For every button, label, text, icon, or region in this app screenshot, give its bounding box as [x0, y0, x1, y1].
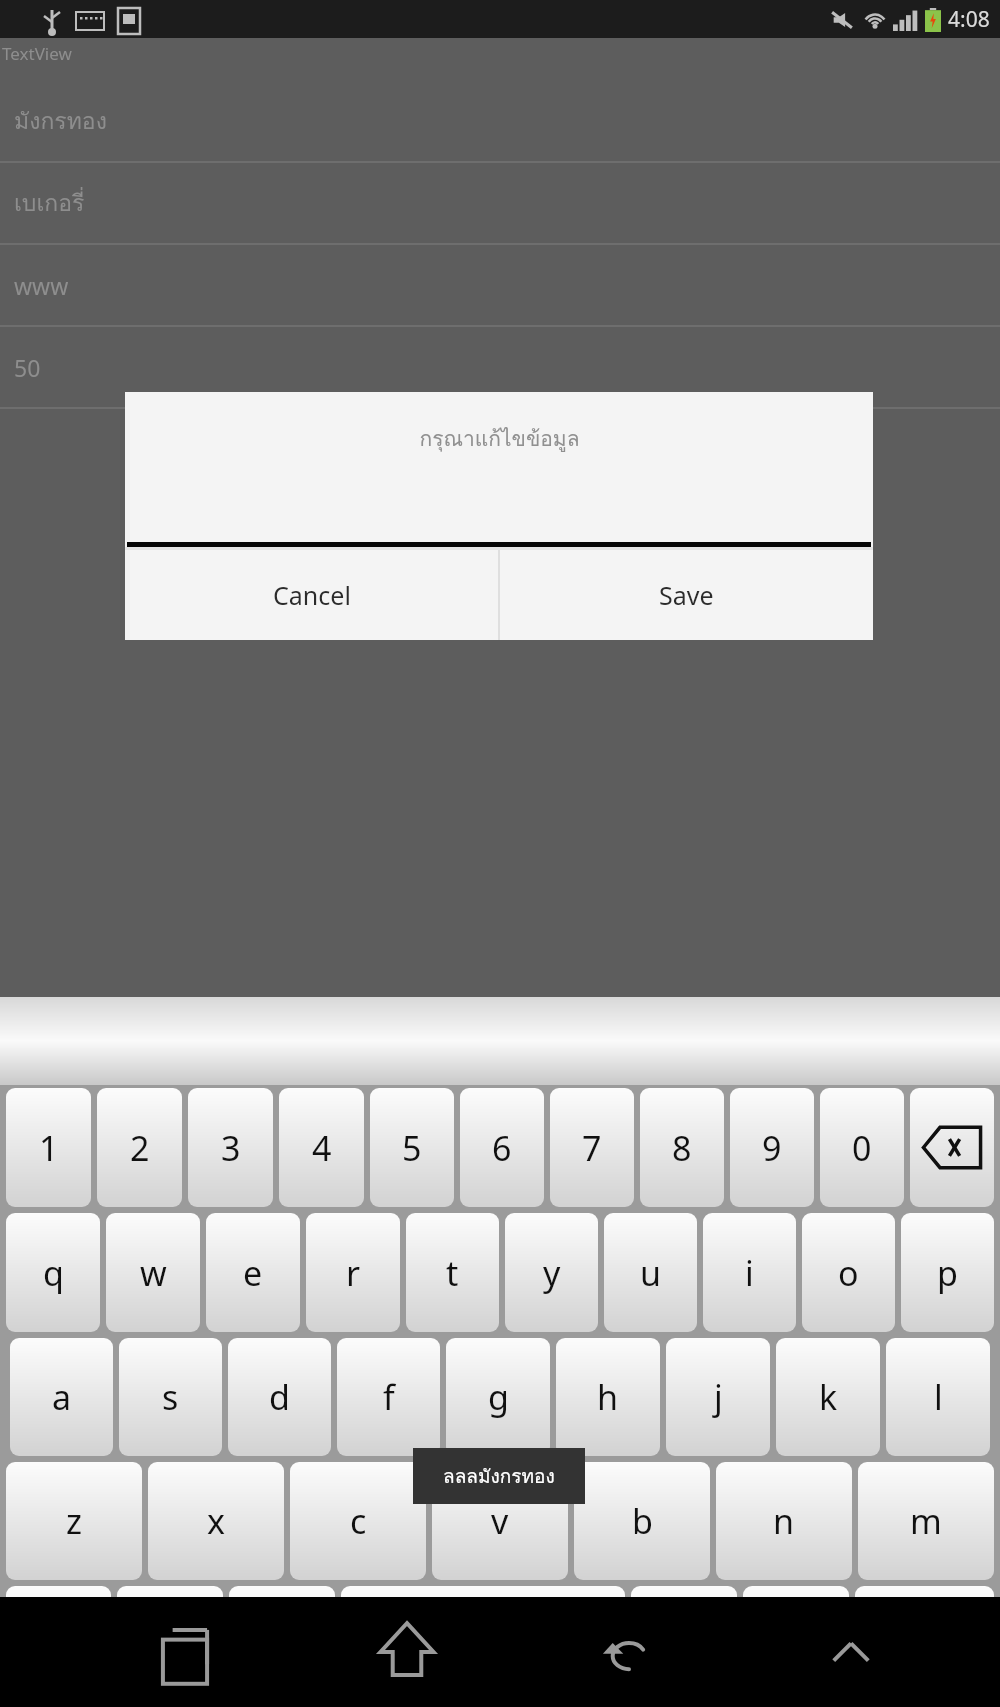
button[interactable]: Home [359, 1604, 455, 1700]
button[interactable]: 5 [370, 1088, 454, 1207]
button[interactable]: x [148, 1462, 284, 1580]
button[interactable]: 2 [97, 1088, 182, 1207]
button[interactable]: 8 [640, 1088, 724, 1207]
button[interactable]: Save [500, 550, 873, 640]
button[interactable]: g [446, 1338, 550, 1456]
button[interactable]: > [631, 1586, 737, 1704]
button[interactable]: Backspace [910, 1088, 994, 1207]
button[interactable]: @# [117, 1586, 223, 1704]
button[interactable]: q [6, 1213, 100, 1332]
staticText: p [937, 1250, 958, 1296]
button[interactable]: v [432, 1462, 568, 1580]
staticText: r [346, 1250, 361, 1296]
button[interactable]: Enter [855, 1586, 994, 1704]
staticText: 5 [402, 1125, 422, 1171]
staticText: b [632, 1498, 653, 1544]
staticText: d [269, 1374, 290, 1420]
button[interactable]: 4 [279, 1088, 364, 1207]
button[interactable]: l [886, 1338, 990, 1456]
staticText: f [383, 1374, 395, 1420]
button[interactable]: ! [743, 1586, 849, 1704]
staticText: c [350, 1498, 367, 1544]
button[interactable]: t [406, 1213, 499, 1332]
staticText: @# [147, 1625, 194, 1666]
button[interactable]: m [858, 1462, 994, 1580]
staticText: x [207, 1498, 225, 1544]
button[interactable]: c [290, 1462, 426, 1580]
staticText: 4:08 [948, 5, 990, 34]
staticText: 8 [672, 1125, 692, 1171]
button[interactable]: Back [581, 1604, 677, 1700]
staticText: y [543, 1250, 561, 1296]
staticText: www [14, 270, 69, 301]
button[interactable]: 7 [550, 1088, 634, 1207]
button[interactable]: o [802, 1213, 895, 1332]
button[interactable]: 50 [0, 327, 1000, 407]
staticText: u [640, 1250, 662, 1296]
staticText: 2 [130, 1125, 150, 1171]
staticText: เบเกอรี่ [14, 185, 85, 222]
staticText: a [52, 1374, 72, 1420]
staticText: w [140, 1250, 167, 1296]
staticText: 9 [762, 1125, 782, 1171]
staticText: m [910, 1498, 942, 1544]
staticText: Save [659, 578, 714, 612]
button[interactable]: n [716, 1462, 852, 1580]
button[interactable]: z [6, 1462, 142, 1580]
staticText: i [745, 1250, 754, 1296]
button[interactable]: i [703, 1213, 796, 1332]
button[interactable]: a [10, 1338, 113, 1456]
staticText: v [491, 1498, 509, 1544]
button[interactable]: ⌴ [341, 1586, 625, 1704]
button[interactable]: b [574, 1462, 710, 1580]
staticText: h [597, 1374, 619, 1420]
button[interactable]: 0 [820, 1088, 904, 1207]
button[interactable]: Recents [137, 1604, 233, 1700]
staticText: 7 [582, 1125, 602, 1171]
button[interactable]: y [505, 1213, 598, 1332]
staticText: 50 [14, 352, 41, 383]
staticText: TextView [2, 42, 72, 65]
staticText: ลลลมังกรทอง [443, 1461, 555, 1491]
button[interactable]: 1 [6, 1088, 91, 1207]
button[interactable]: d [228, 1338, 331, 1456]
button[interactable]: 3 [188, 1088, 273, 1207]
staticText: 0 [852, 1125, 872, 1171]
staticText: g [488, 1374, 509, 1420]
staticText: z [66, 1498, 82, 1544]
button[interactable]: Hide keyboard [6, 1586, 111, 1704]
staticText: n [773, 1498, 795, 1544]
button[interactable]: w [106, 1213, 200, 1332]
button[interactable]: p [901, 1213, 994, 1332]
staticText: Cancel [273, 578, 351, 612]
button[interactable]: มังกรทอง [0, 81, 1000, 161]
button[interactable]: r [306, 1213, 400, 1332]
button[interactable]: Cancel [125, 550, 498, 640]
button[interactable]: k [776, 1338, 880, 1456]
button[interactable]: 9 [730, 1088, 814, 1207]
staticText: กรุณาแก้ไขข้อมูล [419, 422, 580, 455]
staticText: s [162, 1374, 179, 1420]
staticText: 1 [39, 1125, 59, 1171]
staticText: t [446, 1250, 459, 1296]
staticText: มังกรทอง [14, 103, 107, 140]
staticText: j [714, 1374, 723, 1420]
button[interactable]: e [206, 1213, 300, 1332]
button[interactable]: u [604, 1213, 697, 1332]
button[interactable]: f [337, 1338, 440, 1456]
button[interactable]: < [229, 1586, 335, 1704]
staticText: 6 [492, 1125, 512, 1171]
button[interactable]: j [666, 1338, 770, 1456]
staticText: 3 [221, 1125, 241, 1171]
staticText: o [838, 1250, 859, 1296]
button[interactable]: s [119, 1338, 222, 1456]
button[interactable]: h [556, 1338, 660, 1456]
staticText: 4 [312, 1125, 332, 1171]
button[interactable]: 6 [460, 1088, 544, 1207]
button[interactable]: More [803, 1604, 899, 1700]
